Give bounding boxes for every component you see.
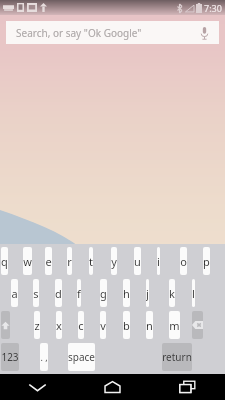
button[interactable]: w [23, 247, 32, 275]
staticText: m [169, 318, 180, 333]
staticText: 123 [1, 350, 19, 364]
staticText: h [123, 286, 130, 301]
button[interactable]: x [56, 311, 62, 339]
staticText: space [68, 350, 95, 364]
button[interactable]: j [146, 279, 149, 307]
button[interactable]: Shift [1, 311, 10, 339]
button[interactable]: return [162, 343, 192, 371]
staticText: k [169, 286, 175, 301]
staticText: u [134, 254, 141, 269]
button[interactable]: s [33, 279, 39, 307]
button[interactable]: z [34, 311, 40, 339]
button[interactable]: o [180, 247, 187, 275]
button[interactable]: Back [0, 374, 75, 400]
staticText: v [100, 318, 106, 333]
staticText: Search, or say "Ok Google" [16, 26, 142, 40]
staticText: o [180, 254, 187, 269]
staticText: w [23, 254, 32, 269]
button[interactable]: . , [40, 343, 48, 371]
button[interactable]: g [100, 279, 107, 307]
button[interactable]: h [123, 279, 130, 307]
staticText: b [123, 318, 130, 333]
button[interactable]: Recent apps [150, 374, 225, 400]
button[interactable]: Search, or say "Ok Google" [6, 21, 219, 44]
button[interactable]: b [123, 311, 130, 339]
staticText: l [192, 286, 195, 301]
staticText: s [33, 286, 39, 301]
button[interactable]: q [1, 247, 8, 275]
button[interactable]: f [77, 279, 81, 307]
staticText: n [146, 318, 153, 333]
button[interactable]: v [100, 311, 106, 339]
button[interactable]: k [169, 279, 175, 307]
staticText: z [34, 318, 40, 333]
staticText: x [56, 318, 62, 333]
staticText: i [157, 254, 160, 269]
button[interactable]: Home [75, 374, 150, 400]
button[interactable]: e [45, 247, 52, 275]
button[interactable]: p [203, 247, 210, 275]
button[interactable]: y [111, 247, 117, 275]
staticText: return [162, 350, 192, 364]
button[interactable]: n [146, 311, 153, 339]
button[interactable]: Voice search [195, 24, 213, 42]
staticText: e [45, 254, 52, 269]
button[interactable]: u [134, 247, 141, 275]
button[interactable]: 123 [1, 343, 19, 371]
staticText: a [11, 286, 18, 301]
button[interactable]: space [68, 343, 95, 371]
button[interactable]: i [157, 247, 160, 275]
staticText: f [77, 286, 81, 301]
button[interactable]: c [78, 311, 84, 339]
button[interactable]: a [11, 279, 18, 307]
button[interactable]: t [89, 247, 93, 275]
button[interactable]: Backspace [192, 311, 203, 339]
staticText: y [111, 254, 117, 269]
staticText: d [55, 286, 62, 301]
button[interactable]: r [67, 247, 72, 275]
staticText: g [100, 286, 107, 301]
staticText: q [1, 254, 8, 269]
staticText: 7:30 [204, 2, 222, 14]
staticText: t [89, 254, 93, 269]
staticText: r [67, 254, 72, 269]
staticText: c [78, 318, 84, 333]
button[interactable]: d [55, 279, 62, 307]
staticText: . , [40, 351, 48, 363]
button[interactable]: l [192, 279, 195, 307]
staticText: p [203, 254, 210, 269]
button[interactable]: m [169, 311, 180, 339]
staticText: j [146, 286, 149, 301]
